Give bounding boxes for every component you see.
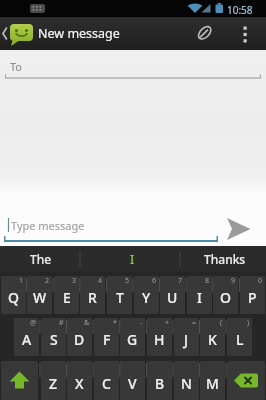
button[interactable]: O — [213, 276, 238, 314]
staticText: R — [88, 288, 97, 307]
button[interactable]: I — [100, 246, 164, 272]
staticText: T — [116, 288, 124, 307]
staticText: K — [208, 330, 217, 349]
button[interactable]: R — [80, 276, 105, 314]
button[interactable] — [0, 50, 266, 83]
staticText: B — [155, 374, 165, 393]
button[interactable] — [227, 361, 265, 400]
staticText: 9 — [231, 276, 236, 286]
staticText: The — [30, 251, 52, 267]
staticText: 6 — [152, 276, 157, 286]
button[interactable]: K — [200, 318, 225, 356]
staticText: M — [206, 374, 219, 393]
staticText: J — [184, 330, 189, 349]
staticText: = — [192, 318, 197, 328]
staticText: + — [165, 318, 170, 328]
staticText: G — [127, 330, 138, 349]
button[interactable] — [196, 19, 226, 49]
button[interactable]: C — [94, 361, 119, 400]
staticText: X — [75, 374, 84, 393]
staticText: Y — [142, 288, 151, 307]
button[interactable] — [218, 195, 266, 243]
button[interactable]: The — [6, 246, 76, 272]
staticText: & — [84, 318, 90, 328]
staticText: - — [140, 318, 143, 328]
staticText: V — [128, 374, 137, 393]
button[interactable]: J — [174, 318, 199, 356]
staticText: P — [248, 288, 257, 307]
staticText: Z — [49, 374, 58, 393]
button[interactable]: N — [174, 361, 199, 400]
button[interactable]: S — [41, 318, 66, 356]
staticText: 0 — [258, 276, 263, 286]
staticText: Thanks — [204, 251, 246, 267]
button[interactable]: L — [227, 318, 252, 356]
button[interactable]: B — [147, 361, 172, 400]
staticText: ) — [247, 318, 250, 328]
staticText: U — [167, 288, 178, 307]
staticText: O — [220, 288, 231, 307]
staticText: * — [113, 318, 117, 328]
button[interactable]: T — [107, 276, 132, 314]
staticText: Q — [8, 288, 19, 307]
staticText: S — [50, 330, 58, 349]
staticText: @ — [30, 318, 37, 328]
staticText: 1 — [19, 276, 24, 286]
button[interactable]: W — [27, 276, 52, 314]
button[interactable]: A — [14, 318, 39, 356]
button[interactable]: H — [147, 318, 172, 356]
staticText: 3 — [72, 276, 77, 286]
button[interactable]: Q — [1, 276, 26, 314]
button[interactable]: Z — [41, 361, 66, 400]
button[interactable]: X — [67, 361, 92, 400]
staticText: H — [154, 330, 165, 349]
staticText: D — [74, 330, 85, 349]
button[interactable] — [0, 17, 36, 50]
staticText: I — [130, 251, 135, 267]
staticText: # — [59, 318, 64, 328]
staticText: 8 — [205, 276, 210, 286]
staticText: C — [102, 374, 111, 393]
staticText: To — [10, 59, 23, 74]
staticText: A — [22, 330, 32, 349]
button[interactable]: U — [160, 276, 185, 314]
button[interactable]: G — [120, 318, 145, 356]
button[interactable]: V — [120, 361, 145, 400]
staticText: Type message — [11, 218, 85, 233]
staticText: F — [103, 330, 111, 349]
button[interactable]: Y — [134, 276, 159, 314]
staticText: 2 — [45, 276, 50, 286]
button[interactable]: Thanks — [188, 246, 262, 272]
staticText: L — [236, 330, 244, 349]
staticText: 10:58 — [227, 3, 253, 17]
staticText: New message — [38, 25, 120, 42]
button[interactable] — [1, 361, 38, 400]
button[interactable]: D — [67, 318, 92, 356]
button[interactable] — [0, 192, 218, 246]
staticText: W — [33, 288, 47, 307]
staticText: N — [181, 374, 192, 393]
button[interactable]: P — [240, 276, 265, 314]
button[interactable]: E — [54, 276, 79, 314]
button[interactable] — [240, 21, 266, 47]
staticText: ( — [220, 318, 223, 328]
staticText: 7 — [178, 276, 183, 286]
staticText: 5 — [125, 276, 130, 286]
button[interactable]: M — [200, 361, 225, 400]
button[interactable]: I — [187, 276, 212, 314]
button[interactable]: F — [94, 318, 119, 356]
staticText: 4 — [98, 276, 103, 286]
staticText: I — [197, 288, 202, 307]
staticText: E — [63, 288, 71, 307]
